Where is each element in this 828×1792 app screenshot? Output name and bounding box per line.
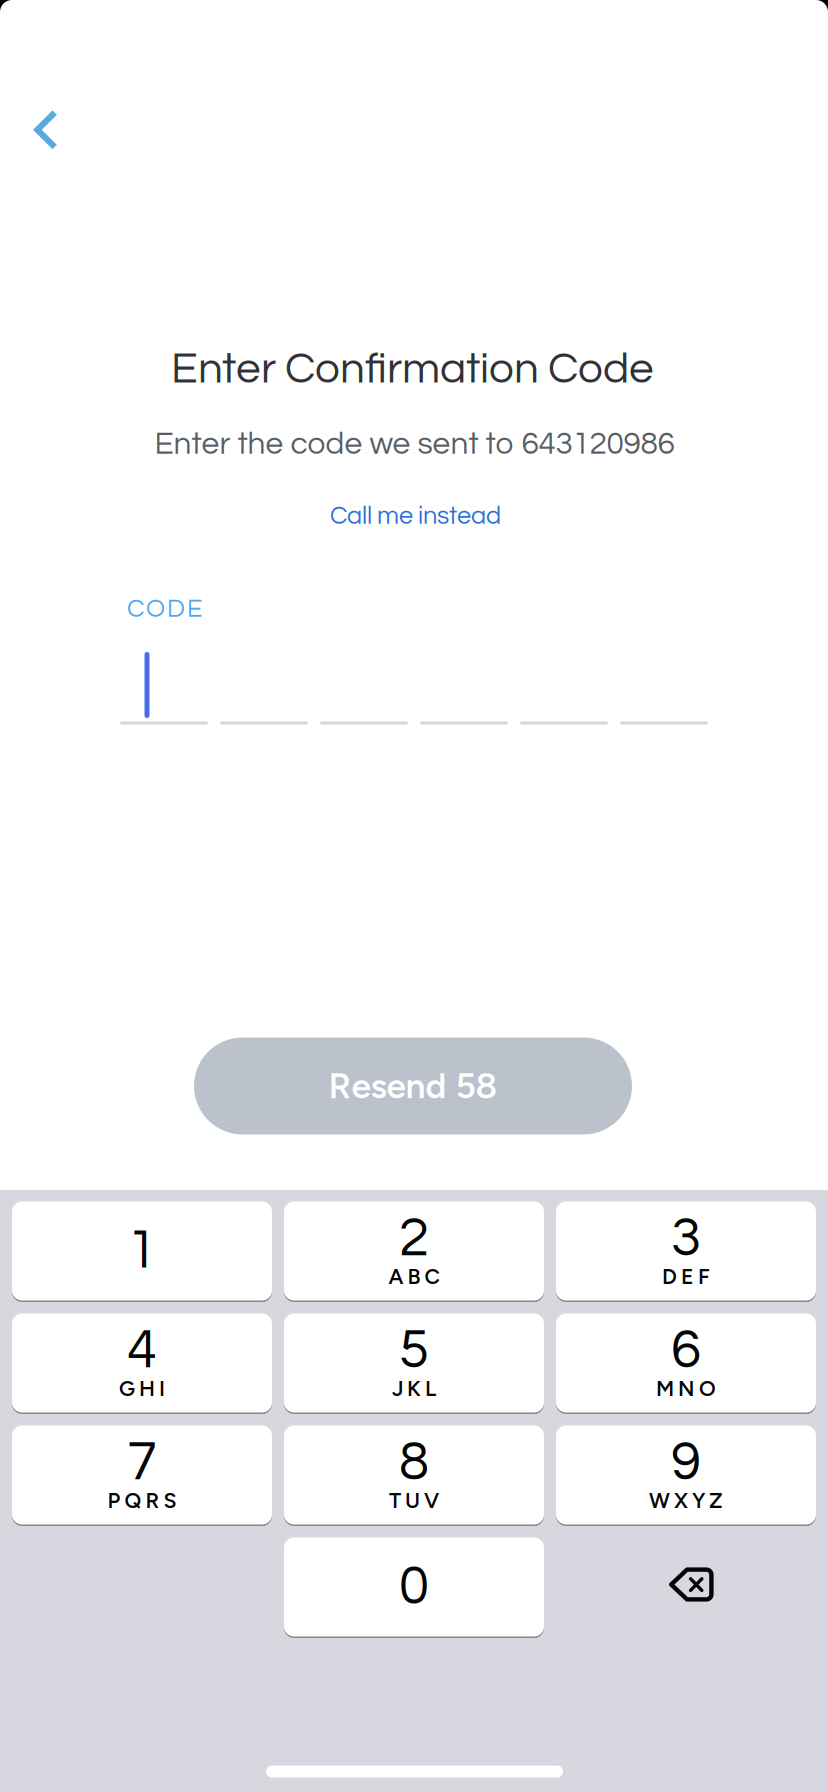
staticText: J K L xyxy=(392,1376,436,1401)
staticText: 0 xyxy=(399,1559,429,1615)
staticText: T U V xyxy=(389,1488,439,1513)
staticText: 9 xyxy=(671,1434,701,1491)
staticText: Enter Confirmation Code xyxy=(171,346,654,392)
staticText: 3 xyxy=(671,1210,701,1267)
staticText: M N O xyxy=(656,1376,716,1401)
button[interactable]: Delete xyxy=(556,1537,816,1636)
staticText: 4 xyxy=(127,1322,157,1379)
staticText: D E F xyxy=(662,1264,710,1289)
staticText: P Q R S xyxy=(107,1488,176,1513)
button[interactable]: 7 xyxy=(12,1425,272,1524)
staticText: 6 xyxy=(671,1322,701,1379)
staticText: CODE xyxy=(127,596,202,622)
button[interactable]: 6 xyxy=(556,1313,816,1412)
button[interactable]: 9 xyxy=(556,1425,816,1524)
staticText: 1 xyxy=(127,1223,157,1279)
button[interactable]: Call me instead xyxy=(285,488,545,544)
button[interactable]: 5 xyxy=(284,1313,544,1412)
button[interactable]: 8 xyxy=(284,1425,544,1524)
button[interactable]: 0 xyxy=(284,1537,544,1636)
button[interactable]: Back xyxy=(0,82,94,178)
staticText: Call me instead xyxy=(330,503,501,529)
staticText: G H I xyxy=(119,1376,165,1401)
staticText: A B C xyxy=(388,1264,439,1289)
button[interactable]: 4 xyxy=(12,1313,272,1412)
button[interactable]: 3 xyxy=(556,1201,816,1300)
button[interactable]: 2 xyxy=(284,1201,544,1300)
staticText: 8 xyxy=(399,1434,429,1491)
button[interactable]: Resend 58 xyxy=(194,1037,632,1134)
staticText: W X Y Z xyxy=(649,1488,723,1513)
staticText: Enter the code we sent to 643120986 xyxy=(154,428,674,460)
staticText: 2 xyxy=(399,1210,429,1267)
staticText: Resend 58 xyxy=(328,1065,497,1107)
button[interactable]: 1 xyxy=(12,1201,272,1300)
staticText: 7 xyxy=(127,1434,157,1491)
staticText: 5 xyxy=(399,1322,429,1379)
